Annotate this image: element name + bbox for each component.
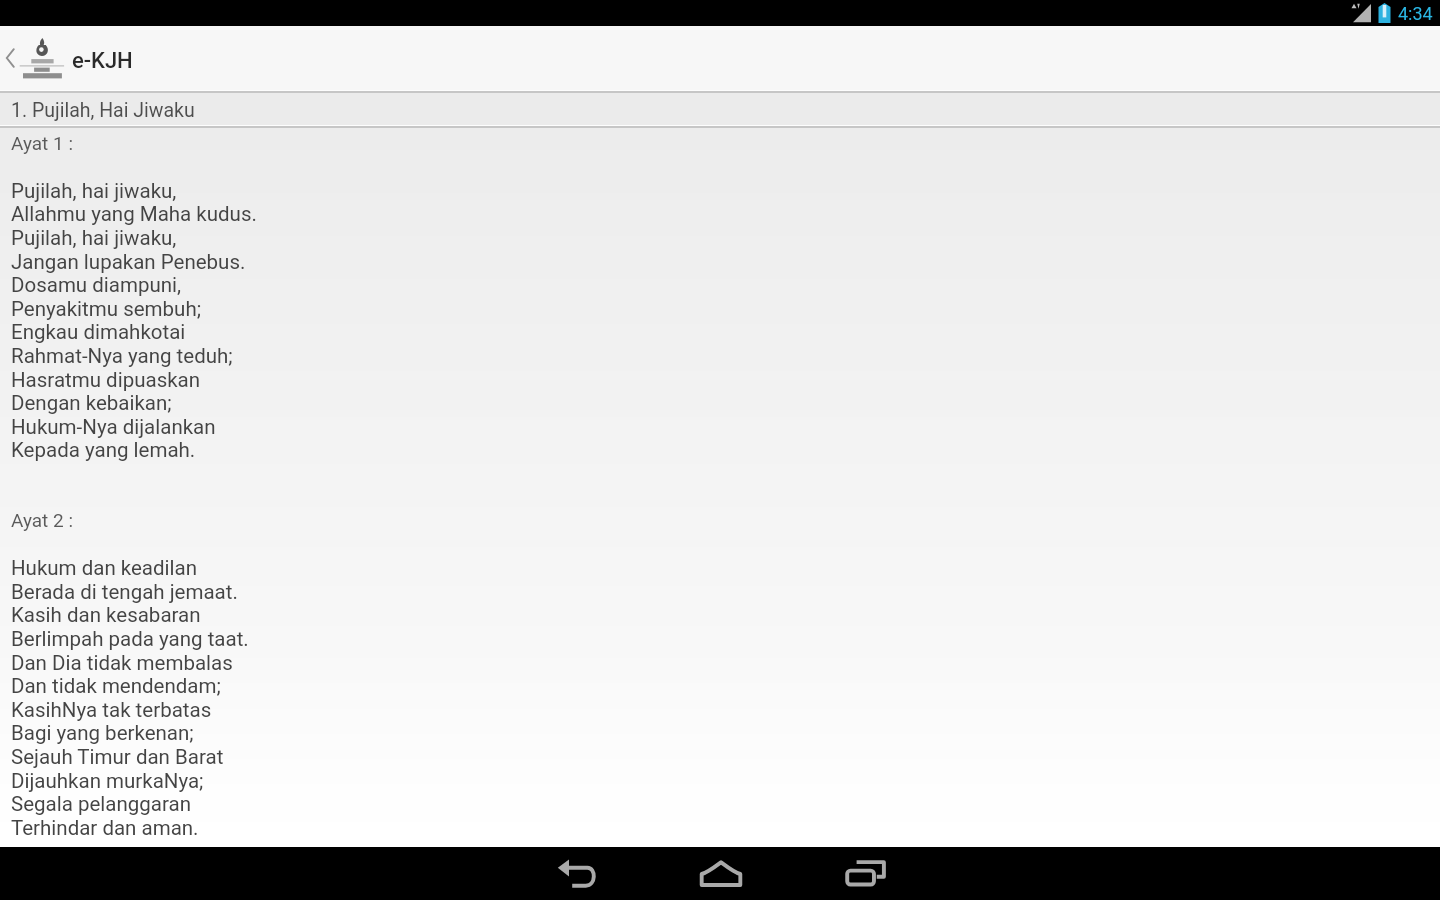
staticText: Dan Dia tidak membalas <box>11 651 233 675</box>
staticText: Allahmu yang Maha kudus. <box>11 202 257 226</box>
button[interactable]: Recent apps <box>793 847 937 900</box>
staticText: Penyakitmu sembuh; <box>11 297 202 321</box>
staticText: Dan tidak mendendam; <box>11 674 221 698</box>
staticText: 4:34 <box>1398 3 1433 24</box>
staticText: 1. Pujilah, Hai Jiwaku <box>11 99 195 122</box>
button[interactable]: 1. Pujilah, Hai Jiwaku <box>0 93 1440 125</box>
staticText: Kasih dan kesabaran <box>11 603 201 627</box>
staticText: Dijauhkan murkaNya; <box>11 769 204 793</box>
staticText: Dengan kebaikan; <box>11 391 172 415</box>
staticText: Hukum dan keadilan <box>11 556 198 580</box>
staticText: Pujilah, hai jiwaku, <box>11 179 177 203</box>
staticText: Dosamu diampuni, <box>11 273 182 297</box>
staticText: KasihNya tak terbatas <box>11 698 212 722</box>
staticText: Hukum-Nya dijalankan <box>11 415 216 439</box>
staticText: Berlimpah pada yang taat. <box>11 627 249 651</box>
staticText: Rahmat-Nya yang teduh; <box>11 344 233 368</box>
button[interactable]: Navigate up <box>0 26 19 90</box>
staticText: Jangan lupakan Penebus. <box>11 250 246 274</box>
staticText: Pujilah, hai jiwaku, <box>11 226 177 250</box>
staticText: Berada di tengah jemaat. <box>11 580 238 604</box>
button[interactable]: Home <box>649 847 793 900</box>
staticText: Ayat 2 : <box>11 509 74 531</box>
staticText: Hasratmu dipuaskan <box>11 368 201 392</box>
staticText: Segala pelanggaran <box>11 792 191 816</box>
staticText: Ayat 1 : <box>11 132 74 154</box>
button[interactable]: Back <box>505 847 649 900</box>
staticText: Engkau dimahkotai <box>11 320 186 344</box>
staticText: Bagi yang berkenan; <box>11 721 194 745</box>
staticText: e-KJH <box>72 48 133 74</box>
staticText: Terhindar dan aman. <box>11 816 199 840</box>
staticText: Kepada yang lemah. <box>11 438 196 462</box>
staticText: Sejauh Timur dan Barat <box>11 745 224 769</box>
